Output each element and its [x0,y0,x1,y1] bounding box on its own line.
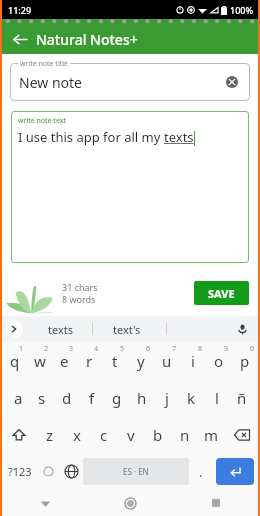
button[interactable]: ES · EN [83,458,189,485]
staticText: ES · EN [123,466,149,477]
button[interactable]: o [206,342,232,379]
staticText: f [89,388,95,408]
button[interactable]: texts [34,316,88,342]
staticText: m [204,425,219,445]
staticText: . [199,463,203,481]
staticText: k [187,388,196,408]
staticText: l [215,388,219,408]
button[interactable]: b [144,416,171,453]
button[interactable]: Voice input [232,319,252,339]
button[interactable]: Backspace [225,416,258,453]
button[interactable]: Recent apps [173,490,258,516]
button[interactable]: s [30,379,54,416]
button[interactable]: d [54,379,79,416]
staticText: h [137,388,147,408]
staticText: p [240,351,250,371]
button[interactable]: v [117,416,144,453]
staticText: s [38,388,46,408]
staticText: r [86,351,93,371]
staticText: I use this app for all my [18,128,164,146]
button[interactable]: More suggestions [5,320,23,338]
button[interactable]: write note text [11,111,249,263]
button[interactable]: . [189,453,212,490]
staticText: ?123 [8,464,32,479]
button[interactable]: h [129,379,154,416]
staticText: i [191,351,195,371]
staticText: 31 chars [62,281,98,293]
button[interactable]: Back [2,490,88,516]
button[interactable]: Enter [216,458,254,485]
staticText: write note text [18,116,66,126]
staticText: New note [19,73,82,92]
staticText: texts [48,322,74,337]
button[interactable]: Change keyboard language [60,453,83,490]
button[interactable]: k [179,379,204,416]
staticText: 4 [94,344,99,354]
button[interactable]: a [6,379,30,416]
staticText: 0 [250,344,255,354]
button[interactable]: Back [2,24,36,54]
button[interactable]: ñ [229,379,254,416]
staticText: z [46,425,54,445]
staticText: 11:29 [8,4,32,16]
staticText: a [14,388,23,408]
staticText: n [180,425,190,445]
staticText: e [60,351,69,371]
staticText: c [100,425,108,445]
staticText: 8 [198,344,203,354]
button[interactable]: Clear title [222,72,242,92]
button[interactable]: SAVE [194,281,249,305]
staticText: w [34,351,46,371]
button[interactable]: r [77,342,102,379]
button[interactable]: w [27,342,52,379]
staticText: 8 words [62,293,96,305]
staticText: 9 [224,344,229,354]
button[interactable]: Shift [2,416,36,453]
staticText: x [73,425,81,445]
button[interactable]: m [198,416,225,453]
button[interactable]: New note [10,63,250,101]
staticText: y [137,351,145,371]
button[interactable]: z [36,416,63,453]
staticText: v [127,425,135,445]
staticText: texts [164,128,194,146]
staticText: q [10,351,20,371]
button[interactable]: ?123 [2,453,37,490]
staticText: 5 [120,344,125,354]
staticText: d [62,388,72,408]
button[interactable]: text's [100,316,154,342]
staticText: 1 [19,344,24,354]
button[interactable]: x [63,416,90,453]
staticText: b [153,425,163,445]
button[interactable]: f [79,379,104,416]
button[interactable]: y [128,342,154,379]
staticText: o [214,351,224,371]
button[interactable]: t [102,342,128,379]
staticText: 7 [172,344,177,354]
staticText: g [112,388,122,408]
button[interactable]: c [90,416,117,453]
staticText: SAVE [208,286,235,301]
button[interactable]: j [154,379,179,416]
staticText: 6 [146,344,151,354]
button[interactable]: u [154,342,180,379]
button[interactable]: l [204,379,229,416]
button[interactable]: g [104,379,129,416]
staticText: text's [113,322,141,337]
staticText: 100% [230,4,254,16]
button[interactable]: q [2,342,27,379]
button[interactable]: Home [88,490,173,516]
staticText: u [162,351,172,371]
staticText: j [165,388,169,408]
button[interactable]: Emoji [37,453,60,490]
button[interactable]: p [232,342,258,379]
staticText: t [112,351,118,371]
button[interactable]: i [180,342,206,379]
button[interactable]: e [52,342,77,379]
staticText: ñ [237,388,247,408]
staticText: write note title [20,59,68,69]
staticText: 3 [69,344,74,354]
staticText: 2 [44,344,49,354]
button[interactable]: n [171,416,198,453]
staticText: Natural Notes+ [36,30,138,49]
